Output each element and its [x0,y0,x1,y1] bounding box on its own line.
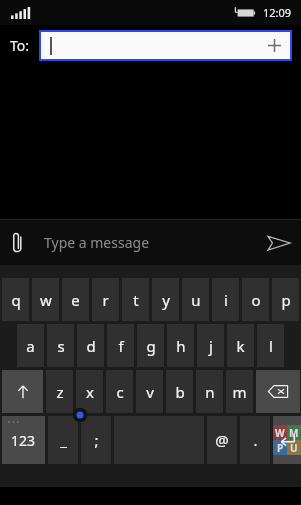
staticText: Type a message [44,233,150,252]
staticText: w [40,290,52,310]
button[interactable]: Shift [2,370,43,413]
staticText: j [209,336,213,356]
button[interactable]: d [77,324,104,367]
button[interactable]: . [240,416,270,464]
button[interactable]: g [137,324,164,367]
button[interactable]: s [47,324,74,367]
button[interactable]: w [32,278,59,321]
staticText: a [26,336,35,356]
button[interactable]: @ [207,416,237,464]
button[interactable]: q [2,278,29,321]
button[interactable]: c [106,370,133,413]
button[interactable]: x [76,370,103,413]
staticText: m [232,382,247,402]
button[interactable]: Enter [273,416,301,464]
staticText: s [57,336,65,356]
button[interactable]: l [257,324,284,367]
button[interactable]: i [212,278,239,321]
staticText: W [275,426,285,440]
staticText: y [162,290,170,310]
button[interactable]: Backspace [256,370,300,413]
button[interactable]: j [197,324,224,367]
button[interactable]: Attach [0,220,301,265]
staticText: v [146,382,154,402]
staticText: b [175,382,185,402]
staticText: 12:09 [263,5,292,20]
staticText: To: [10,36,30,55]
staticText: . [253,430,258,450]
button[interactable]: r [92,278,119,321]
other: Send [268,235,290,251]
other: Attach [12,232,23,253]
staticText: i [224,290,228,310]
staticText: f [118,336,124,356]
button[interactable]: f [107,324,134,367]
button[interactable]: v [136,370,163,413]
button[interactable]: 123 [2,416,45,464]
staticText: n [205,382,215,402]
button[interactable]: n [196,370,223,413]
button[interactable]: a [17,324,44,367]
button[interactable]: y [152,278,179,321]
button[interactable]: h [167,324,194,367]
staticText: g [146,336,156,356]
staticText: r [102,290,109,310]
staticText: U [290,441,298,455]
staticText: o [251,290,261,310]
staticText: t [133,290,139,310]
staticText: p [281,290,291,310]
staticText: u [191,290,201,310]
button[interactable]: b [166,370,193,413]
button[interactable]: ; [81,416,111,464]
staticText: ; [94,430,99,450]
staticText: x [86,382,94,402]
button[interactable]: Add contact [41,32,290,59]
staticText: @ [215,430,229,450]
staticText: k [236,336,245,356]
staticText: P [277,441,284,455]
staticText: l [269,336,273,356]
button[interactable]: m [226,370,253,413]
staticText: q [11,290,21,310]
staticText: h [176,336,186,356]
staticText: 123 [11,431,36,450]
staticText: c [116,382,124,402]
button[interactable]: z [46,370,73,413]
button[interactable]: k [227,324,254,367]
button[interactable]: e [62,278,89,321]
staticText: z [56,382,64,402]
staticText: _ [60,430,67,450]
staticText: d [86,336,96,356]
button[interactable]: t [122,278,149,321]
staticText: M [289,426,299,440]
button[interactable]: u [182,278,209,321]
button[interactable]: o [242,278,269,321]
staticText: e [71,290,80,310]
button[interactable]: _ [48,416,78,464]
other: Add contact [268,39,281,52]
button[interactable]: p [272,278,299,321]
